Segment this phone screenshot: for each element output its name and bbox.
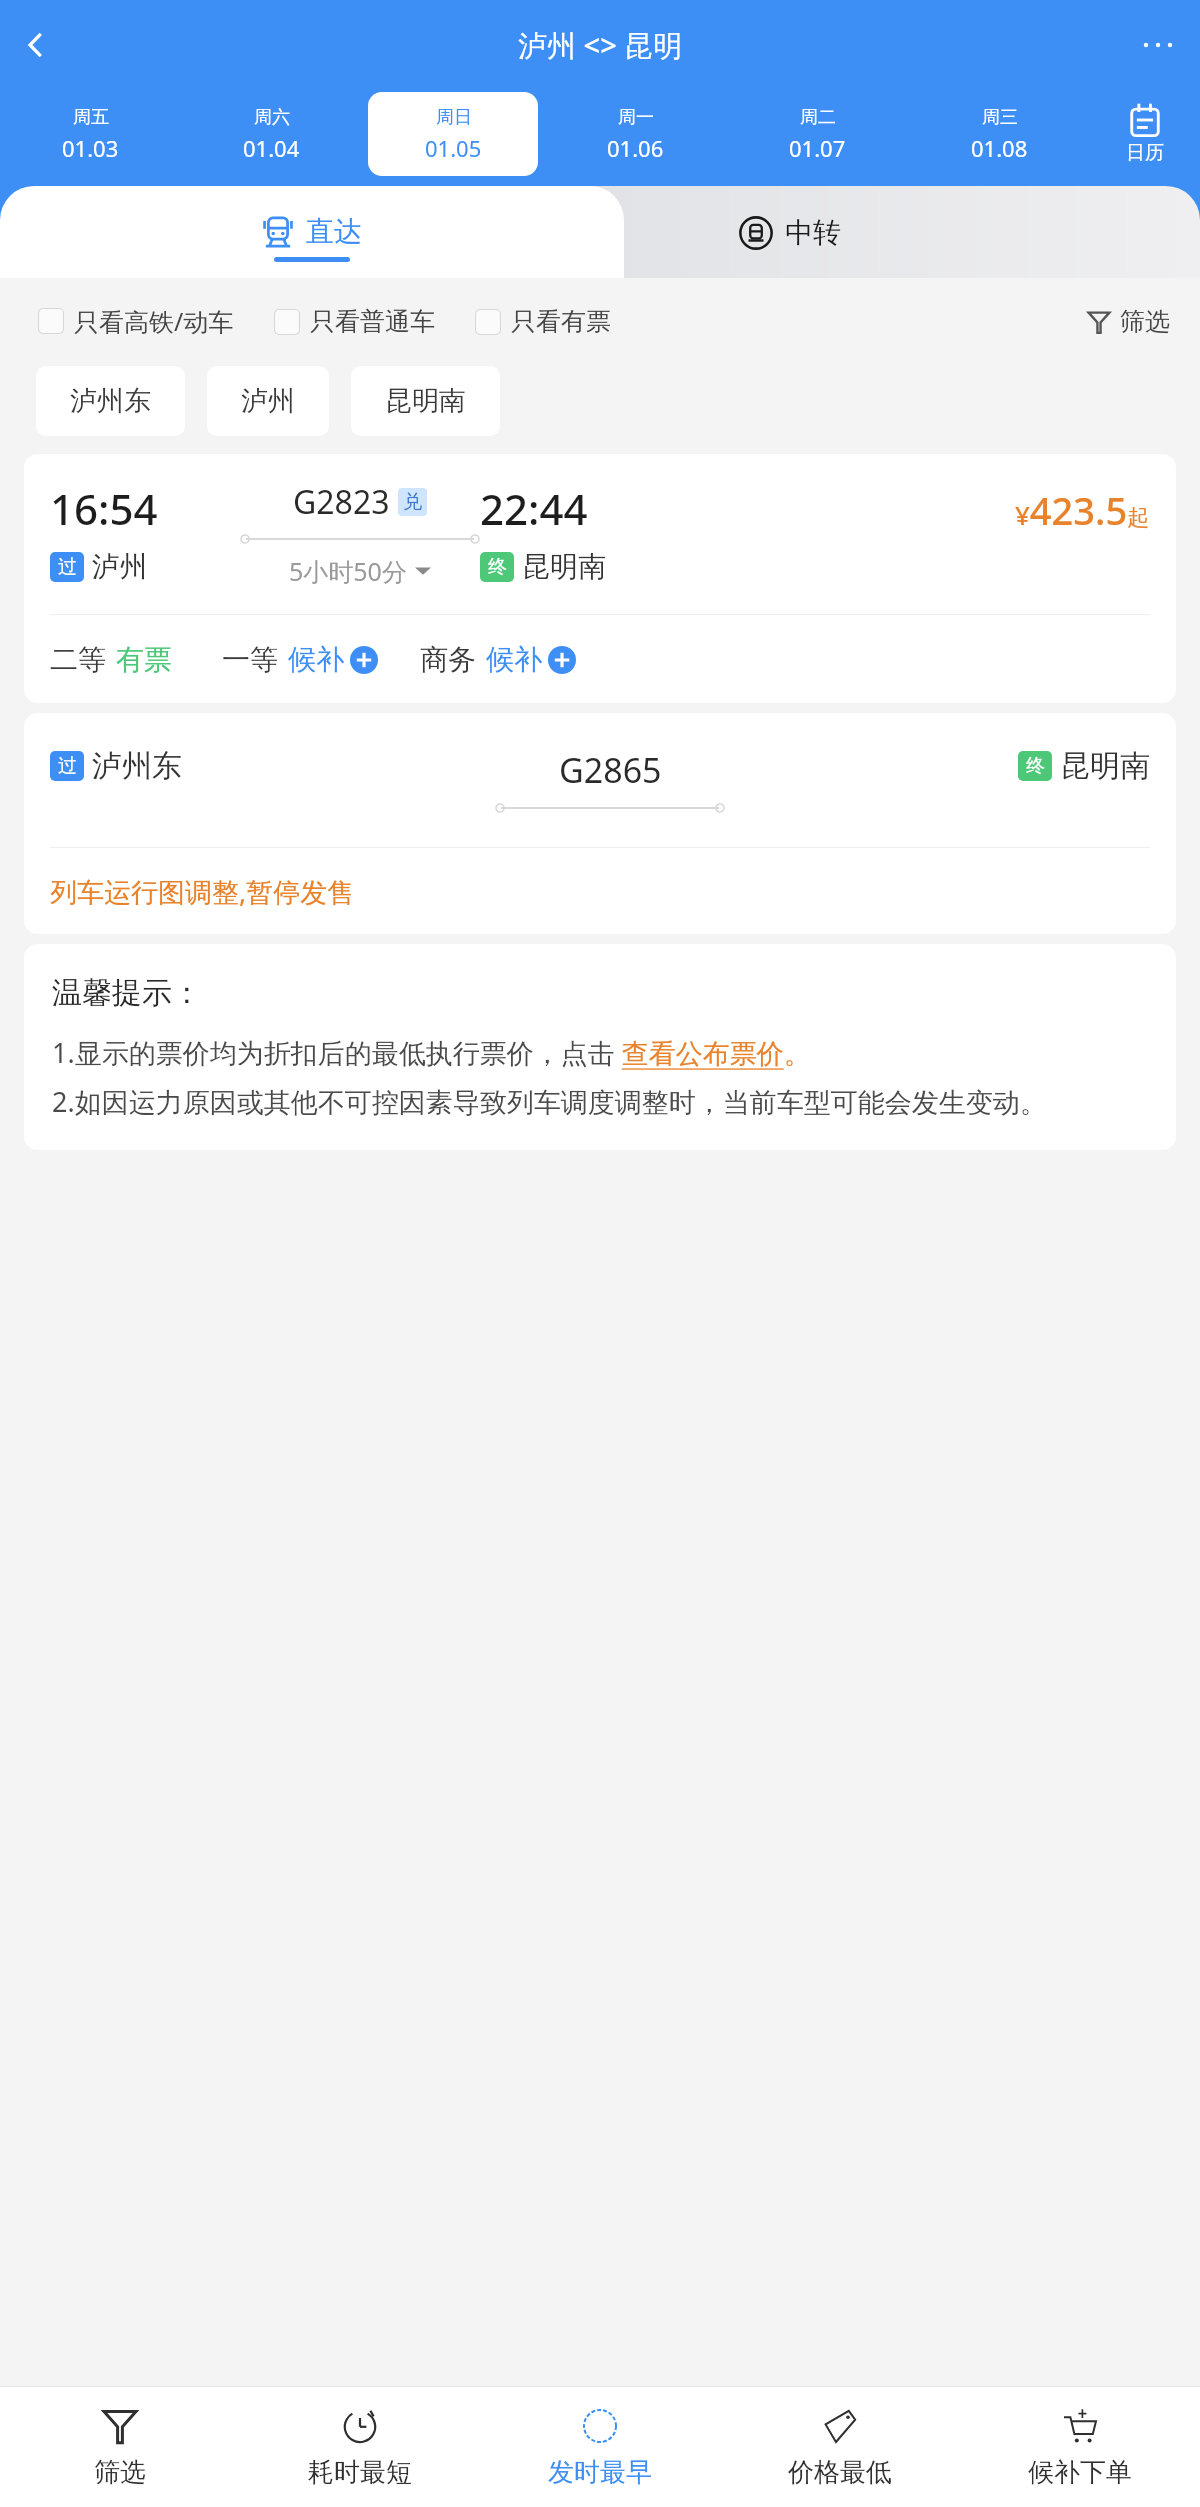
- staticText: 过: [58, 555, 77, 579]
- staticText: 01.07: [789, 133, 846, 163]
- staticText: 16:54: [50, 480, 158, 537]
- button[interactable]: 耗时最短: [240, 2387, 480, 2507]
- staticText: 01.04: [243, 133, 300, 163]
- staticText: 5小时50分: [289, 554, 407, 588]
- staticText: 01.03: [62, 133, 119, 163]
- staticText: 只看高铁/动车: [74, 304, 234, 338]
- staticText: 1.显示的票价均为折扣后的最低执行票价，点击 查看公布票价。: [52, 1034, 811, 1071]
- button[interactable]: 只看高铁/动车: [38, 304, 234, 338]
- staticText: 耗时最短: [308, 2456, 412, 2489]
- button[interactable]: 周一: [550, 92, 720, 176]
- staticText: 周六: [254, 106, 290, 129]
- staticText: 发时最早: [548, 2456, 652, 2489]
- staticText: 商务: [420, 642, 476, 677]
- staticText: 候补: [288, 642, 344, 677]
- staticText: ¥423.5起: [1015, 484, 1150, 536]
- staticText: 昆明南: [385, 384, 466, 418]
- button[interactable]: 价格最低: [720, 2387, 960, 2507]
- button[interactable]: 筛选: [0, 2387, 240, 2507]
- button[interactable]: 直达: [0, 186, 624, 278]
- staticText: 终: [488, 555, 507, 579]
- button[interactable]: 过: [24, 713, 1176, 934]
- staticText: 周五: [73, 106, 109, 129]
- staticText: 候补下单: [1028, 2456, 1132, 2489]
- button[interactable]: 一等: [222, 642, 378, 677]
- staticText: 温馨提示：: [52, 974, 202, 1012]
- staticText: 泸州东: [70, 384, 151, 418]
- staticText: 终: [1026, 754, 1045, 778]
- button[interactable]: More options: [1128, 15, 1188, 75]
- staticText: 昆明南: [1060, 747, 1150, 785]
- staticText: 一等: [222, 642, 278, 677]
- staticText: 周二: [800, 106, 836, 129]
- staticText: 过: [58, 754, 77, 778]
- button[interactable]: 周日: [368, 92, 538, 176]
- staticText: 中转: [785, 215, 841, 250]
- staticText: 01.06: [607, 133, 664, 163]
- staticText: G2823: [293, 480, 390, 524]
- staticText: 筛选: [1120, 306, 1170, 337]
- staticText: 价格最低: [788, 2456, 892, 2489]
- button[interactable]: 只看普通车: [274, 306, 435, 337]
- staticText: 01.05: [425, 133, 482, 163]
- staticText: 只看有票: [511, 306, 611, 337]
- button[interactable]: 昆明南: [351, 366, 500, 436]
- staticText: 周三: [982, 106, 1018, 129]
- staticText: 泸州: [92, 549, 148, 584]
- staticText: 泸州 <> 昆明: [518, 25, 683, 65]
- staticText: 泸州: [241, 384, 295, 418]
- button[interactable]: 周二: [732, 92, 902, 176]
- staticText: 列车运行图调整,暂停发售: [50, 873, 355, 910]
- button[interactable]: 筛选: [1086, 306, 1170, 337]
- button[interactable]: Back: [6, 15, 66, 75]
- staticText: 候补: [486, 642, 542, 677]
- staticText: 22:44: [480, 480, 588, 537]
- button[interactable]: 二等: [50, 642, 172, 677]
- staticText: G2865: [559, 747, 662, 793]
- button[interactable]: 商务: [420, 642, 576, 677]
- staticText: 2.如因运力原因或其他不可控因素导致列车调度调整时，当前车型可能会发生变动。: [52, 1083, 1047, 1120]
- button[interactable]: 周五: [6, 92, 175, 176]
- button[interactable]: 周三: [914, 92, 1084, 176]
- staticText: 泸州东: [92, 747, 182, 785]
- button[interactable]: 候补下单: [960, 2387, 1200, 2507]
- button[interactable]: 发时最早: [480, 2387, 720, 2507]
- button[interactable]: 泸州: [207, 366, 329, 436]
- staticText: 01.08: [971, 133, 1028, 163]
- staticText: 筛选: [94, 2456, 146, 2489]
- staticText: 周日: [436, 106, 472, 129]
- button[interactable]: 中转: [260, 186, 1200, 278]
- staticText: 昆明南: [522, 549, 606, 584]
- staticText: 兑: [403, 490, 422, 514]
- button[interactable]: 周六: [187, 92, 356, 176]
- staticText: 二等: [50, 642, 106, 677]
- button[interactable]: 泸州东: [36, 366, 185, 436]
- staticText: 直达: [306, 214, 362, 249]
- staticText: 周一: [618, 106, 654, 129]
- staticText: 日历: [1126, 141, 1164, 165]
- button[interactable]: 16:54: [24, 454, 1176, 703]
- staticText: 只看普通车: [310, 306, 435, 337]
- button[interactable]: 只看有票: [475, 306, 611, 337]
- staticText: 有票: [116, 642, 172, 677]
- button[interactable]: 日历: [1090, 90, 1200, 178]
